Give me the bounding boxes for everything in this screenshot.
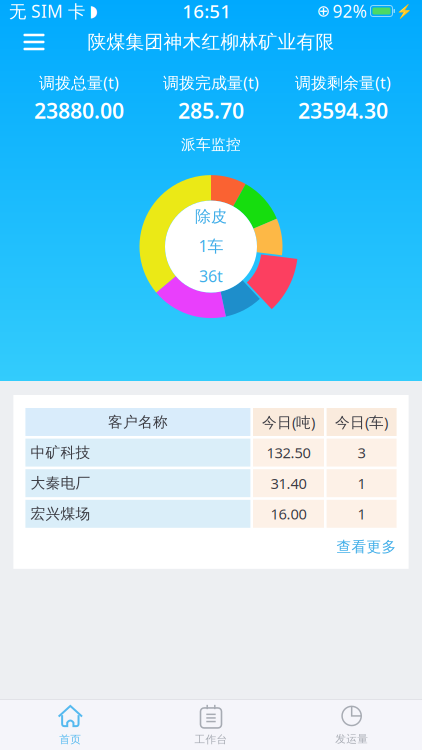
staticText: 无 SIM 卡 [9,0,85,22]
staticText: 23880.00 [34,96,124,124]
button[interactable]: Menu [12,22,56,62]
staticText: 除皮 [195,206,227,226]
staticText: 宏兴煤场 [30,505,90,523]
staticText: 工作台 [194,733,227,746]
staticText: 大秦电厂 [30,474,90,492]
staticText: 首页 [59,733,81,746]
staticText: 1 [358,473,366,493]
staticText: 调拨剩余量(t) [295,72,391,93]
staticText: 132.50 [266,443,310,462]
staticText: 1 [358,504,366,524]
staticText: 23594.30 [298,96,388,124]
staticText: 1车 [198,235,223,256]
staticText: ⚡ [396,3,413,19]
staticText: 发运量 [335,732,368,745]
staticText: 16:51 [182,0,231,23]
staticText: 3 [358,443,366,462]
staticText: 92% [332,0,366,22]
staticText: 查看更多 [337,538,397,556]
staticText: 派车监控 [181,136,241,154]
button[interactable]: 发运量 [281,700,422,750]
staticText: 调拨完成量(t) [163,72,259,93]
button[interactable]: 查看更多 [337,530,397,564]
staticText: 285.70 [178,96,244,124]
staticText: 中矿科技 [30,444,90,462]
staticText: 36t [199,265,223,287]
staticText: 今日(吨) [262,412,315,432]
button[interactable]: 工作台 [141,700,281,750]
staticText: ⊕ [316,2,329,20]
staticText: 16.00 [270,504,306,524]
button[interactable]: 首页 [0,700,141,750]
staticText: 客户名称 [108,413,168,431]
staticText: 今日(车) [335,412,388,432]
staticText: ◗ [89,2,97,20]
staticText: 31.40 [270,473,306,493]
staticText: 陕煤集团神木红柳林矿业有限 [87,30,334,53]
staticText: 调拨总量(t) [39,72,119,93]
